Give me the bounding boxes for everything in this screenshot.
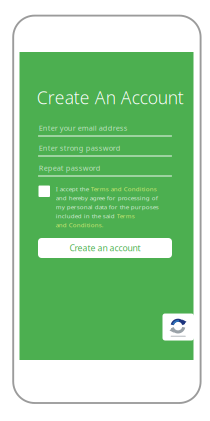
- staticText: Create an account: [69, 242, 140, 254]
- staticText: I accept the: [56, 185, 91, 193]
- staticText: Terms: [117, 212, 135, 220]
- staticText: and Conditions.: [56, 221, 104, 229]
- button[interactable]: Create an account: [38, 238, 172, 258]
- staticText: Repeat password: [39, 163, 101, 173]
- staticText: Enter your email address: [39, 123, 128, 133]
- staticText: and hereby agree for processing of: [56, 194, 158, 202]
- staticText: Terms and Conditions: [91, 185, 157, 193]
- button[interactable]: Accept the Terms and Conditions: [38, 185, 50, 197]
- staticText: Create An Account: [37, 86, 184, 109]
- staticText: included in the said: [56, 212, 117, 220]
- staticText: my personal data for the purposes: [56, 203, 159, 211]
- staticText: Enter strong password: [39, 143, 121, 153]
